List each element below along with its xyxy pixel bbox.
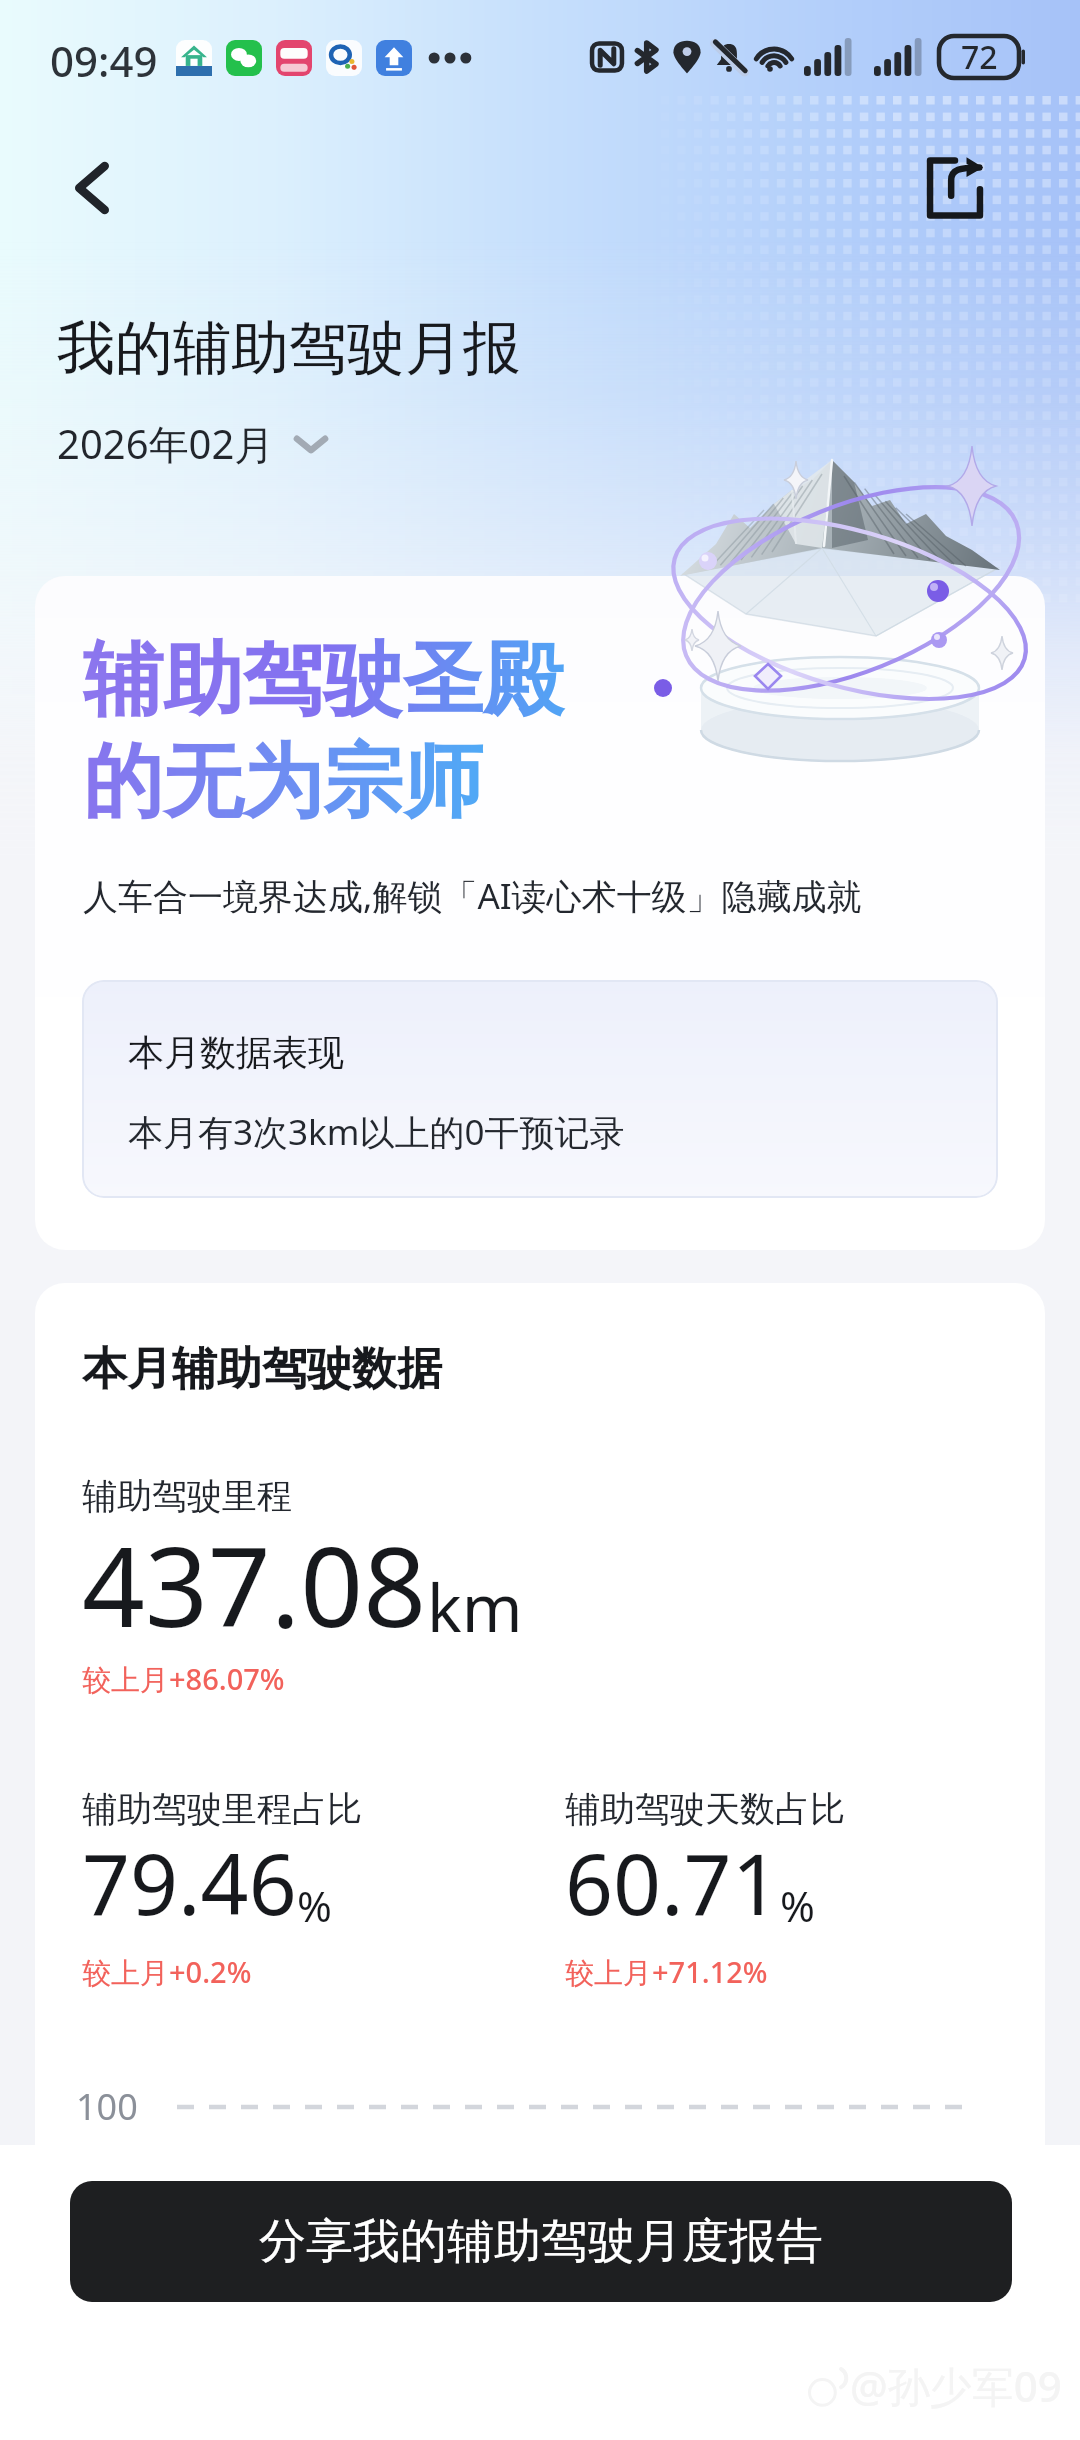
staticText: 60.71 <box>565 1825 780 1939</box>
staticText: 的无为宗师 <box>83 732 483 833</box>
button[interactable]: 分享我的辅助驾驶月度报告 <box>70 2181 1012 2302</box>
staticText: 较上月+71.12% <box>565 1952 768 1992</box>
staticText: 人车合一境界达成,解锁「AI读心术十级」隐藏成就 <box>83 872 862 920</box>
staticText: 100 <box>76 2082 138 2131</box>
staticText: % <box>297 1877 332 1934</box>
staticText: 79.46 <box>82 1825 297 1939</box>
staticText: 09:49 <box>50 32 158 89</box>
button[interactable]: Share <box>912 145 998 231</box>
staticText: 较上月+0.2% <box>82 1952 252 1992</box>
staticText: 437.08 <box>82 1509 427 1659</box>
staticText: 本月有3次3km以上的0干预记录 <box>128 1108 625 1156</box>
staticText: 辅助驾驶天数占比 <box>565 1787 845 1831</box>
staticText: 2026年02月 <box>57 416 275 471</box>
staticText: 本月辅助驾驶数据 <box>82 1341 442 1398</box>
staticText: 辅助驾驶里程 <box>82 1474 292 1518</box>
staticText: 我的辅助驾驶月报 <box>57 312 521 385</box>
staticText: % <box>780 1877 815 1934</box>
staticText: 分享我的辅助驾驶月度报告 <box>259 2212 823 2271</box>
staticText: 辅助驾驶圣殿 <box>83 630 563 731</box>
staticText: 辅助驾驶里程占比 <box>82 1787 362 1831</box>
button[interactable]: Back <box>44 140 140 236</box>
staticText: km <box>427 1563 523 1652</box>
staticText: 72 <box>961 35 998 79</box>
staticText: 本月数据表现 <box>128 1030 344 1075</box>
staticText: @孙少军09 <box>850 2357 1062 2414</box>
staticText: 较上月+86.07% <box>82 1659 285 1699</box>
